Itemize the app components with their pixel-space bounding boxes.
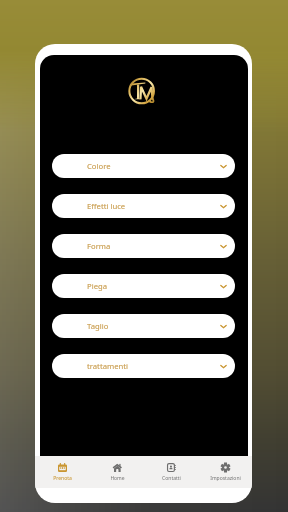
staticText: Colore <box>87 161 111 171</box>
other: Expand <box>220 203 227 210</box>
button[interactable]: trattamenti <box>52 354 235 378</box>
button[interactable]: Taglio <box>52 314 235 338</box>
button[interactable]: Impostazioni <box>198 456 252 488</box>
button[interactable]: Contatti <box>144 456 198 488</box>
staticText: Home <box>110 475 125 482</box>
button[interactable]: Prenota <box>35 456 90 488</box>
staticText: Forma <box>87 241 111 251</box>
other: Expand <box>220 323 227 330</box>
staticText: Prenota <box>53 475 72 482</box>
button[interactable]: Piega <box>52 274 235 298</box>
staticText: Piega <box>87 281 108 291</box>
staticText: Effetti luce <box>87 201 126 211</box>
staticText: Contatti <box>162 475 181 482</box>
other: Logo <box>128 76 158 106</box>
button[interactable]: Home <box>90 456 144 488</box>
button[interactable]: Colore <box>52 154 235 178</box>
staticText: trattamenti <box>87 361 129 371</box>
button[interactable]: Forma <box>52 234 235 258</box>
other: Expand <box>220 283 227 290</box>
other: Expand <box>220 243 227 250</box>
staticText: Impostazioni <box>210 475 241 482</box>
other: Expand <box>220 163 227 170</box>
other: Expand <box>220 363 227 370</box>
button[interactable]: Effetti luce <box>52 194 235 218</box>
staticText: Taglio <box>87 321 109 331</box>
